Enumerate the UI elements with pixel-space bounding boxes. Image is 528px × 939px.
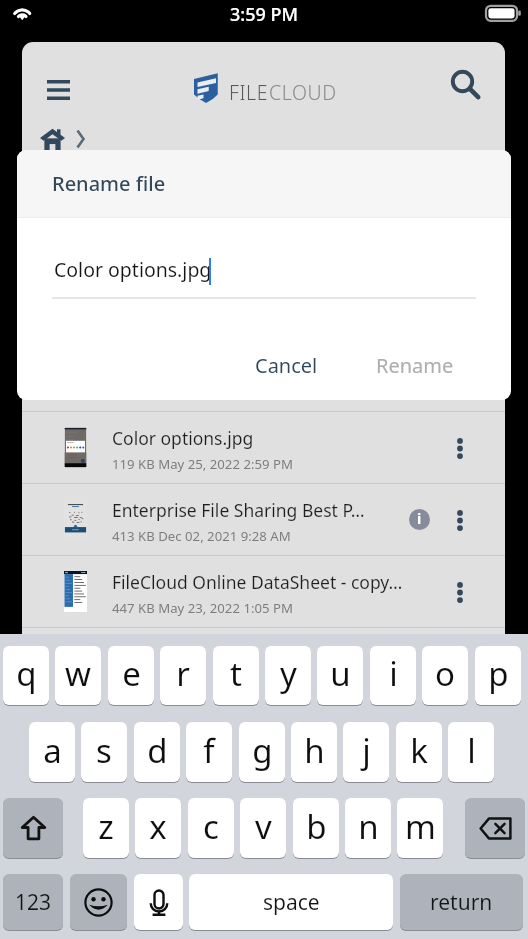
staticText: Color options.jpg [54, 256, 212, 283]
button[interactable]: Numbers [3, 874, 63, 930]
button[interactable]: d [134, 722, 180, 782]
staticText: 123 [15, 888, 52, 917]
staticText: a [43, 728, 62, 773]
button[interactable]: p [475, 646, 521, 705]
staticText: FILE [229, 79, 269, 106]
staticText: e [122, 651, 141, 696]
button[interactable]: m [397, 798, 443, 858]
staticText: return [430, 888, 493, 917]
button[interactable]: b [293, 798, 339, 858]
staticText: g [252, 728, 273, 773]
staticText: space [263, 888, 320, 917]
button[interactable]: f [186, 722, 232, 782]
staticText: c [203, 804, 219, 849]
button[interactable]: h [291, 722, 337, 782]
button[interactable]: Search [446, 65, 486, 105]
staticText: 413 KB Dec 02, 2021 9:28 AM [112, 527, 291, 545]
staticText: s [96, 728, 112, 773]
button[interactable]: More options [442, 574, 478, 610]
button[interactable]: return [400, 874, 523, 930]
staticText: y [280, 651, 297, 696]
staticText: x [149, 804, 167, 849]
button[interactable]: i [370, 646, 416, 705]
button[interactable]: Color options.jpg [22, 412, 505, 483]
staticText: q [16, 651, 37, 696]
button[interactable]: y [265, 646, 311, 705]
button[interactable]: o [422, 646, 468, 705]
button[interactable]: j [343, 722, 389, 782]
staticText: 447 KB May 23, 2022 1:05 PM [112, 599, 293, 617]
button[interactable]: Emoji [70, 874, 127, 930]
button[interactable]: e [108, 646, 154, 705]
button[interactable]: Cancel [239, 342, 334, 389]
button[interactable]: u [317, 646, 363, 705]
button[interactable]: r [160, 646, 206, 705]
button[interactable]: More options [442, 430, 478, 466]
button[interactable]: space [189, 874, 393, 930]
button[interactable]: c [188, 798, 234, 858]
button[interactable]: v [240, 798, 286, 858]
staticText: l [467, 728, 476, 773]
staticText: i [389, 651, 398, 696]
staticText: p [488, 651, 509, 696]
staticText: u [330, 651, 351, 696]
staticText: Rename [376, 352, 454, 379]
button[interactable]: x [135, 798, 181, 858]
button[interactable]: Backspace [465, 798, 525, 858]
staticText: r [176, 651, 190, 696]
button[interactable]: Enterprise File Sharing Best P… [22, 484, 505, 555]
staticText: f [203, 728, 215, 773]
button[interactable]: t [213, 646, 259, 705]
staticText: v [255, 804, 272, 849]
staticText: FileCloud Online DataSheet - copy… [112, 570, 403, 594]
staticText: b [306, 804, 327, 849]
staticText: k [410, 728, 428, 773]
button[interactable]: k [396, 722, 442, 782]
staticText: m [405, 804, 436, 849]
staticText: Cancel [255, 352, 318, 379]
staticText: o [435, 651, 455, 696]
staticText: z [98, 804, 114, 849]
staticText: Color options.jpg [112, 426, 254, 450]
button[interactable]: n [345, 798, 391, 858]
button[interactable]: Voice input [134, 874, 183, 930]
button[interactable]: q [3, 646, 49, 705]
button[interactable]: z [83, 798, 129, 858]
staticText: Rename file [52, 170, 166, 197]
button[interactable]: More options [442, 502, 478, 538]
staticText: i [417, 509, 422, 528]
staticText: d [147, 728, 168, 773]
button[interactable]: FileCloud Online DataSheet - copy… [22, 556, 505, 627]
button[interactable]: Rename [360, 342, 470, 389]
staticText: t [230, 651, 242, 696]
staticText: n [358, 804, 379, 849]
button[interactable]: w [55, 646, 101, 705]
staticText: w [65, 651, 91, 696]
button[interactable]: a [29, 722, 75, 782]
button[interactable]: Menu [38, 70, 78, 110]
staticText: 119 KB May 25, 2022 2:59 PM [112, 455, 293, 473]
button[interactable]: Shift [3, 798, 63, 858]
staticText: 3:59 PM [230, 2, 298, 27]
button[interactable]: l [448, 722, 494, 782]
staticText: Enterprise File Sharing Best P… [112, 498, 365, 522]
button[interactable]: g [239, 722, 285, 782]
staticText: CLOUD [269, 79, 337, 106]
staticText: j [362, 728, 371, 773]
button[interactable]: s [81, 722, 127, 782]
button[interactable]: Info [409, 509, 430, 530]
staticText: h [304, 728, 325, 773]
